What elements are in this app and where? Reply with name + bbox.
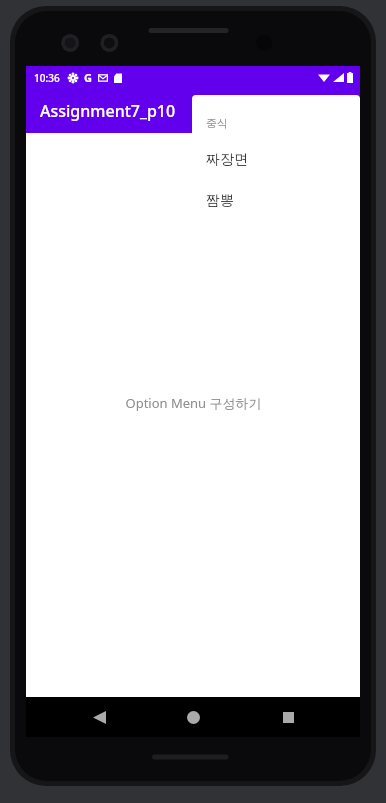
button[interactable]: 짜장면 [192, 139, 360, 180]
staticText: 10:36 [34, 71, 60, 85]
staticText: Option Menu 구성하기 [125, 394, 262, 412]
staticText: 중식 [206, 116, 228, 130]
staticText: 짬뽕 [206, 192, 234, 210]
staticText: 짜장면 [206, 151, 248, 169]
button[interactable]: 중식 [192, 106, 360, 139]
staticText: Assignment7_p10 [40, 100, 176, 122]
button[interactable]: Recent apps [266, 697, 310, 737]
button[interactable]: 짬뽕 [192, 180, 360, 221]
button[interactable]: Home [171, 697, 215, 737]
staticText: G [84, 70, 92, 85]
button[interactable]: Back [77, 697, 121, 737]
